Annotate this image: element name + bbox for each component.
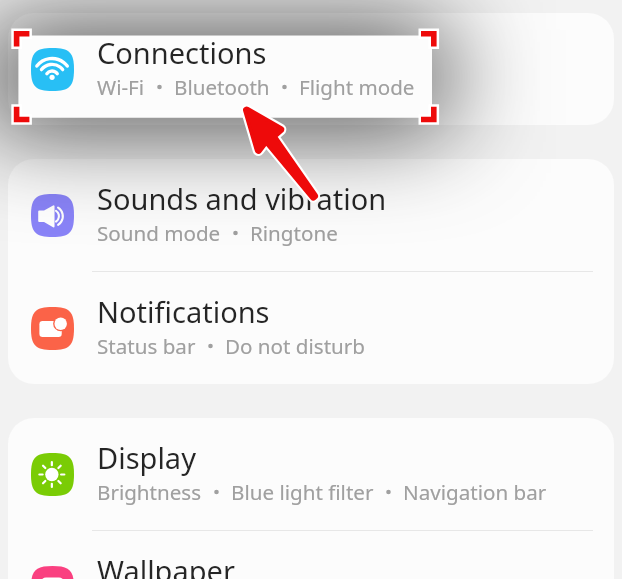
staticText: Sound mode (97, 219, 221, 247)
staticText: Flight mode (299, 73, 415, 101)
button[interactable]: Sounds and vibration (8, 159, 614, 271)
button[interactable]: Connections (8, 13, 614, 125)
staticText: Wi-Fi (97, 73, 145, 101)
staticText: Blue light filter (231, 478, 374, 506)
staticText: Status bar (97, 332, 196, 360)
staticText: Bluetooth (174, 73, 270, 101)
button[interactable]: Wallpaper (8, 531, 614, 579)
staticText: Ringtone (250, 219, 338, 247)
staticText: Brightness (97, 478, 202, 506)
staticText: Do not disturb (225, 332, 365, 360)
staticText: Sounds and vibration (97, 179, 387, 218)
staticText: Navigation bar (403, 478, 547, 506)
button[interactable]: Display (8, 418, 614, 530)
staticText: Navigation bar (403, 478, 547, 506)
button[interactable]: Connections (8, 13, 614, 125)
button[interactable]: Display (8, 418, 614, 530)
staticText: Bluetooth (174, 73, 270, 101)
staticText: Sound mode (97, 219, 221, 247)
other: Connections highlighted (0, 0, 622, 579)
staticText: Connections (97, 33, 267, 72)
staticText: Wallpaper (97, 551, 235, 579)
button[interactable]: Sounds and vibration (8, 159, 614, 271)
staticText: Ringtone (250, 219, 338, 247)
staticText: Display (97, 438, 196, 477)
button[interactable]: Notifications (8, 272, 614, 384)
staticText: Display (97, 438, 196, 477)
staticText: Notifications (97, 292, 270, 331)
button[interactable]: Wallpaper (8, 531, 614, 579)
staticText: Blue light filter (231, 478, 374, 506)
staticText: Wi-Fi (97, 73, 145, 101)
button[interactable]: Notifications (8, 272, 614, 384)
staticText: Do not disturb (225, 332, 365, 360)
staticText: Brightness (97, 478, 202, 506)
staticText: Status bar (97, 332, 196, 360)
staticText: Notifications (97, 292, 270, 331)
staticText: Flight mode (299, 73, 415, 101)
staticText: Sounds and vibration (97, 179, 387, 218)
staticText: Wallpaper (97, 551, 235, 579)
staticText: Connections (97, 33, 267, 72)
